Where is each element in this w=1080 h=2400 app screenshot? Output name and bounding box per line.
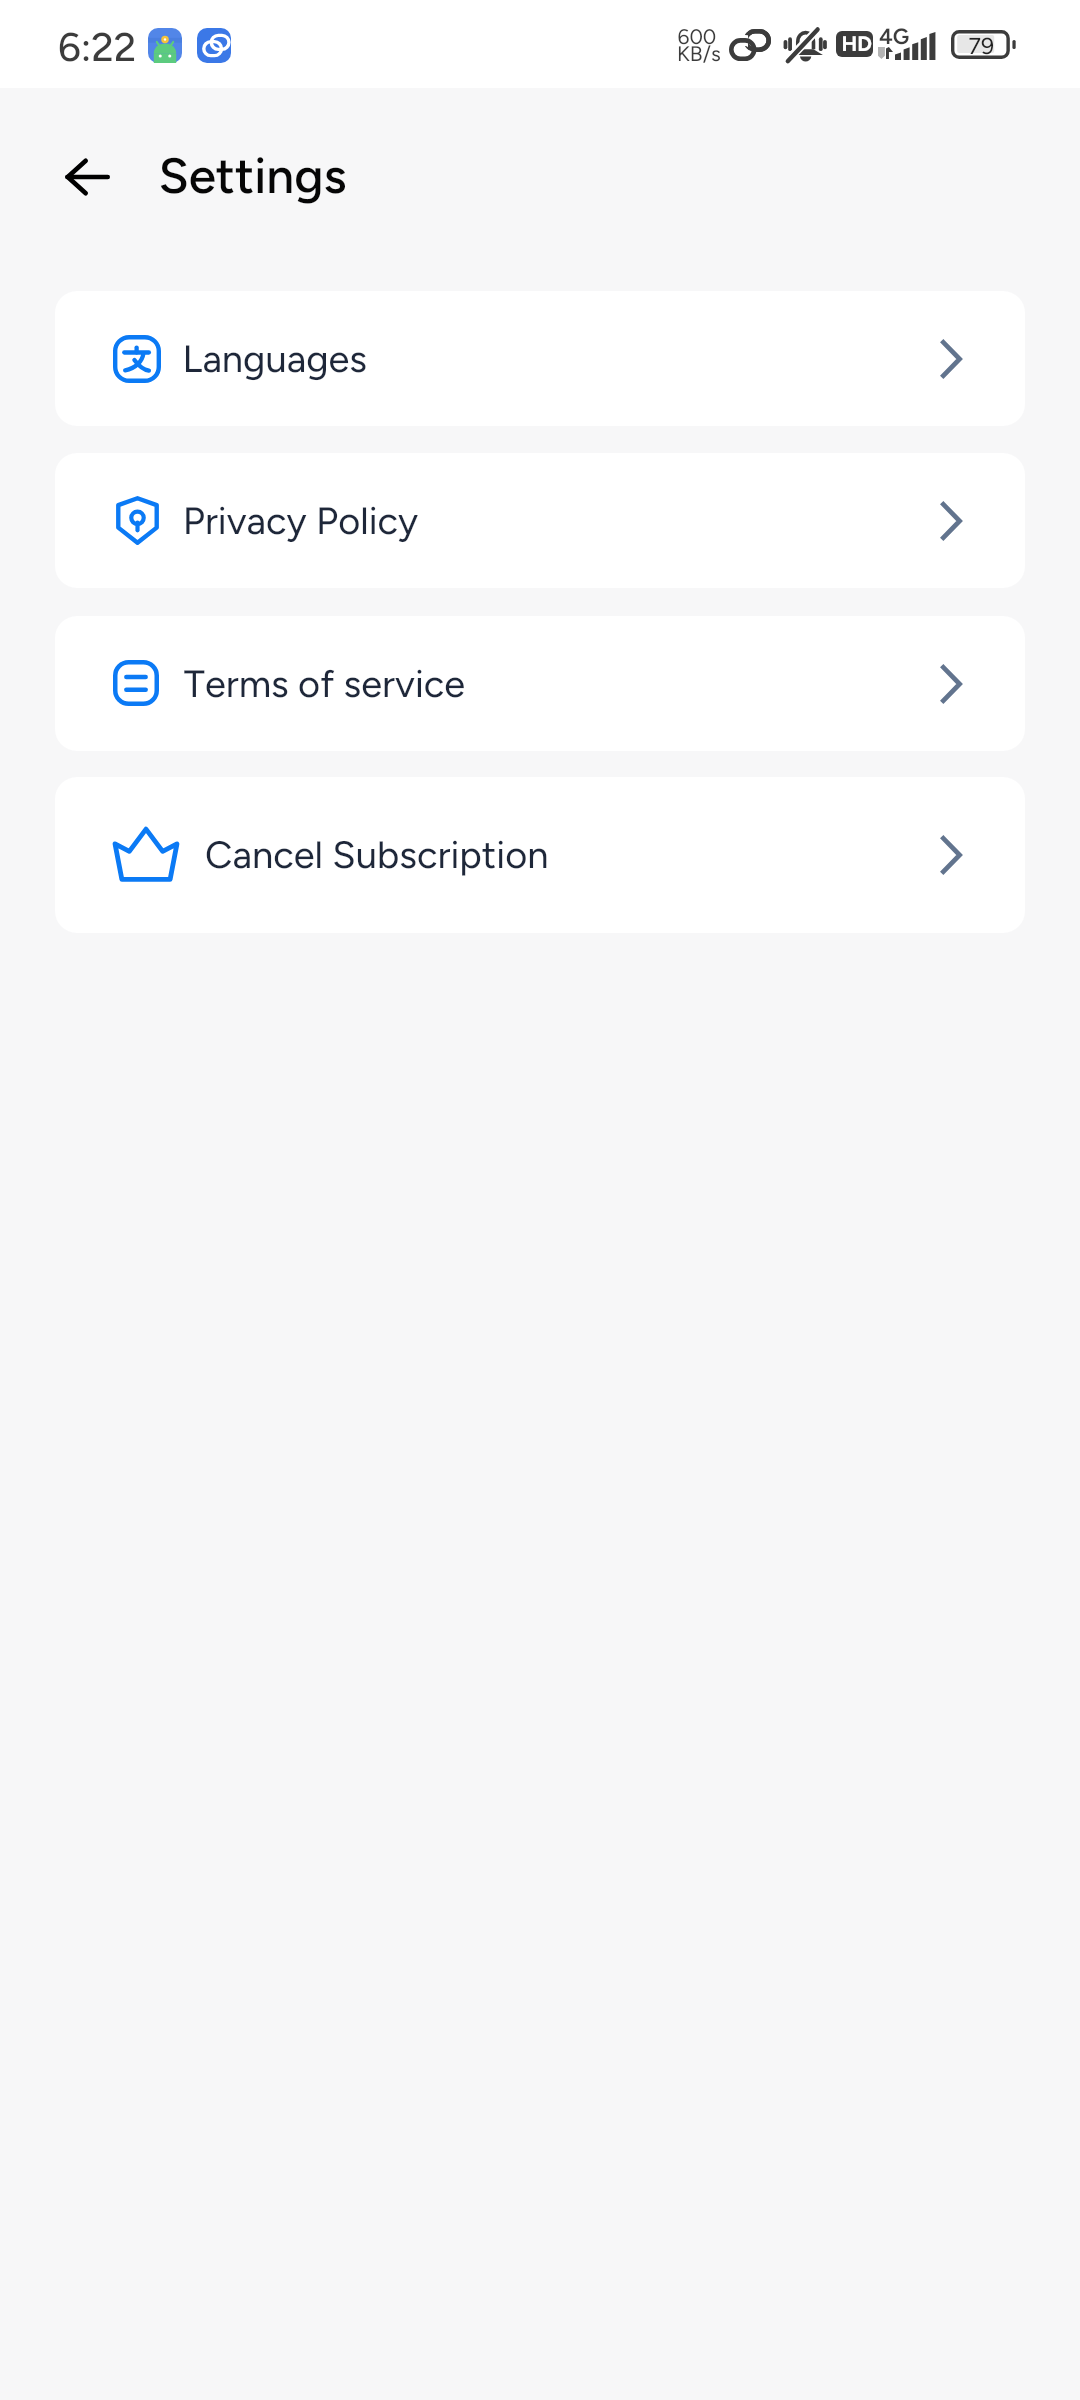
button[interactable]: Back bbox=[55, 145, 119, 209]
other: Settings bbox=[0, 0, 1080, 2400]
button[interactable]: Privacy Policy bbox=[55, 453, 1025, 588]
button[interactable]: Terms of service bbox=[55, 616, 1025, 751]
button[interactable]: Languages bbox=[55, 291, 1025, 426]
button[interactable]: Cancel Subscription bbox=[55, 777, 1025, 933]
